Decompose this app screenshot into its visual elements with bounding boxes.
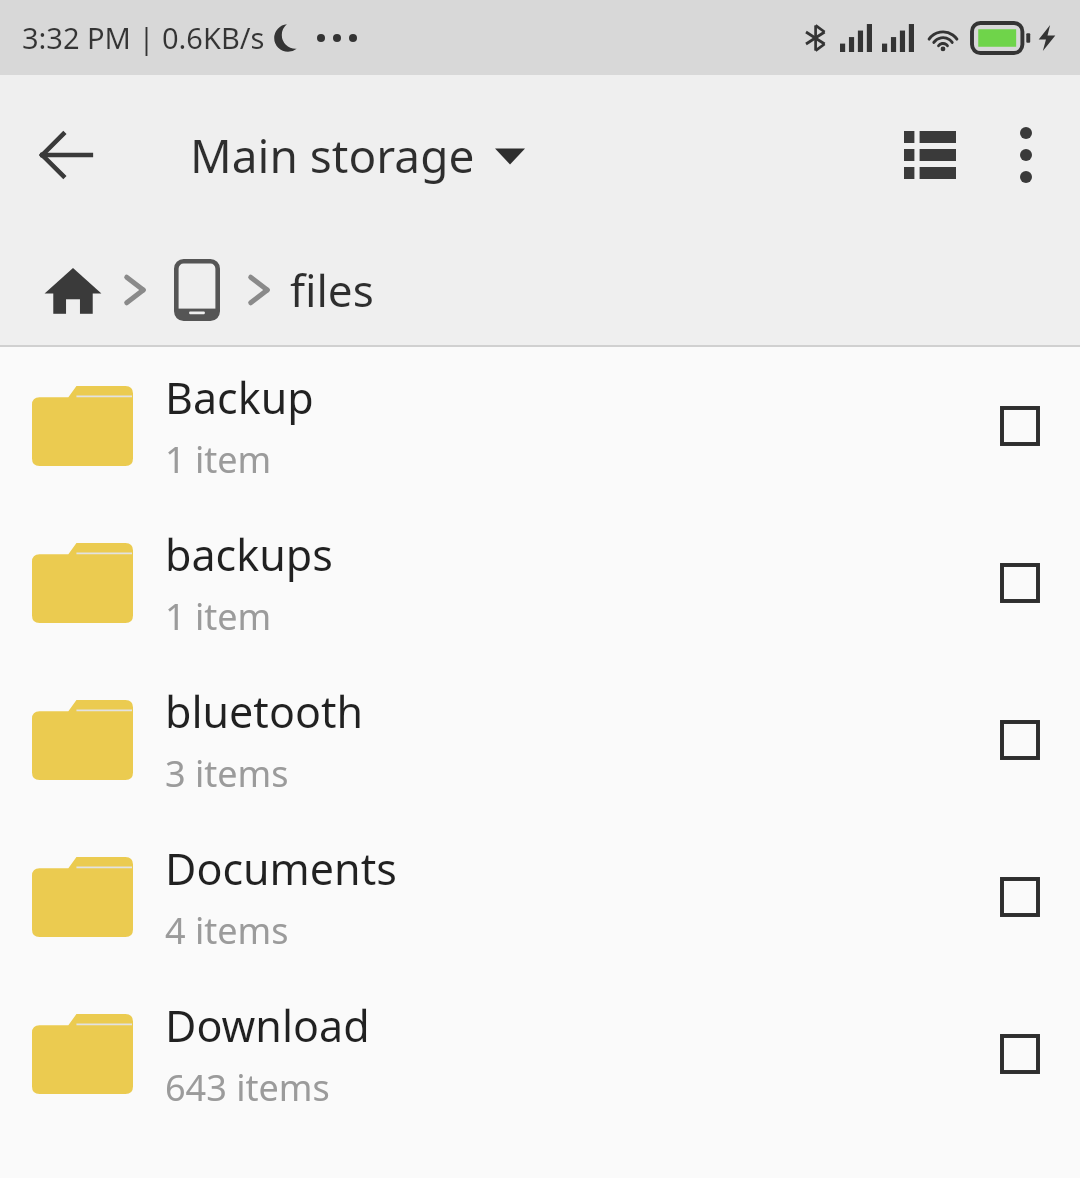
button[interactable]: Main storage xyxy=(190,124,525,187)
button[interactable]: Back xyxy=(18,107,114,203)
button[interactable]: Select Backup xyxy=(970,376,1070,476)
button[interactable]: Internal storage xyxy=(164,257,230,323)
button[interactable]: files xyxy=(290,260,374,320)
staticText: 1 item xyxy=(165,435,272,484)
staticText: 3:32 PM | 0.6KB/s xyxy=(22,18,265,57)
button[interactable]: bluetooth xyxy=(0,661,1080,818)
staticText: 4 items xyxy=(165,906,289,955)
staticText: Main storage xyxy=(190,124,475,187)
button[interactable]: More options xyxy=(978,107,1074,203)
staticText: bluetooth xyxy=(165,682,364,741)
staticText: 1 item xyxy=(165,592,272,641)
button[interactable]: List view xyxy=(882,107,978,203)
button[interactable]: Home xyxy=(40,257,106,323)
staticText: backups xyxy=(165,525,333,584)
button[interactable]: Download xyxy=(0,975,1080,1132)
staticText: files xyxy=(290,260,374,320)
staticText: Download xyxy=(165,996,370,1055)
staticText: Documents xyxy=(165,839,397,898)
button[interactable]: Select bluetooth xyxy=(970,690,1070,790)
button[interactable]: Select Documents xyxy=(970,847,1070,947)
staticText: 643 items xyxy=(165,1063,330,1112)
button[interactable]: Select Download xyxy=(970,1004,1070,1104)
staticText: 3 items xyxy=(165,749,289,798)
button[interactable]: Backup xyxy=(0,347,1080,504)
button[interactable]: Documents xyxy=(0,818,1080,975)
staticText: Backup xyxy=(165,368,314,427)
button[interactable]: backups xyxy=(0,504,1080,661)
button[interactable]: Select backups xyxy=(970,533,1070,633)
